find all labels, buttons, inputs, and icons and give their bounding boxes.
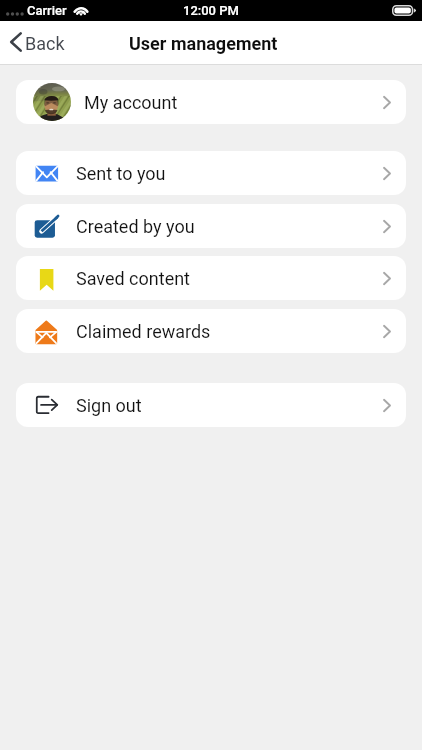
button[interactable]: Claimed rewards bbox=[16, 309, 406, 353]
staticText: Carrier bbox=[27, 3, 67, 18]
button[interactable]: Sent to you bbox=[16, 151, 406, 195]
staticText: Claimed rewards bbox=[76, 321, 211, 342]
staticText: Saved content bbox=[76, 268, 191, 289]
button[interactable]: Created by you bbox=[16, 204, 406, 248]
staticText: Sent to you bbox=[76, 163, 166, 184]
staticText: Created by you bbox=[76, 216, 195, 237]
staticText: Sign out bbox=[76, 395, 142, 416]
staticText: User management bbox=[129, 33, 278, 54]
button[interactable]: Back bbox=[9, 21, 65, 65]
button[interactable]: My account bbox=[16, 80, 406, 124]
staticText: 12:00 PM bbox=[183, 3, 239, 18]
button[interactable]: Sign out bbox=[16, 383, 406, 427]
button[interactable]: Saved content bbox=[16, 256, 406, 300]
staticText: Back bbox=[25, 33, 65, 54]
staticText: My account bbox=[84, 92, 178, 113]
